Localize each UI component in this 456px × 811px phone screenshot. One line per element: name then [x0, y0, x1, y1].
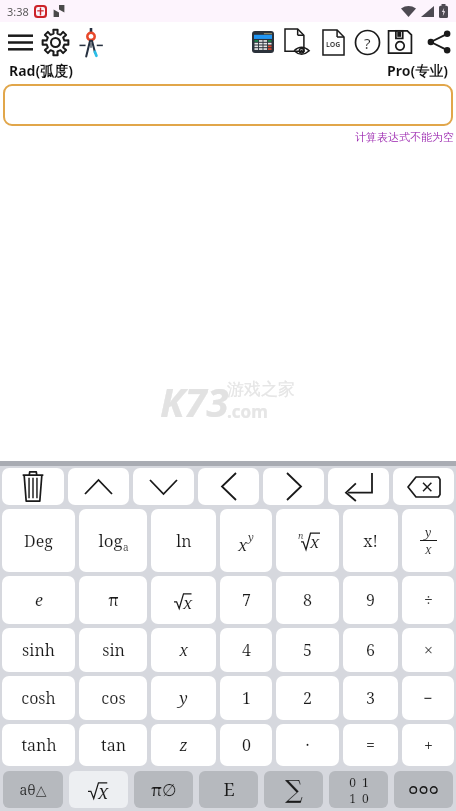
staticText: tan: [101, 734, 126, 756]
button[interactable]: [3, 84, 453, 126]
staticText: a: [123, 540, 129, 554]
button[interactable]: Calculator: [245, 24, 281, 60]
staticText: LOG: [326, 40, 341, 50]
staticText: 3:38: [7, 4, 29, 19]
button[interactable]: log: [79, 509, 147, 572]
button[interactable]: x: [220, 509, 272, 572]
staticText: y: [179, 687, 188, 709]
button[interactable]: Clear: [2, 468, 64, 505]
staticText: 游戏之家: [227, 379, 295, 400]
button[interactable]: sin: [79, 628, 147, 672]
staticText: ×: [424, 639, 433, 661]
staticText: K73: [160, 374, 229, 428]
button[interactable]: 8: [276, 576, 339, 624]
staticText: sin: [102, 639, 125, 661]
button[interactable]: tanh: [2, 724, 75, 766]
button[interactable]: x: [151, 628, 216, 672]
staticText: Deg: [24, 530, 53, 552]
staticText: ?: [364, 33, 371, 53]
button[interactable]: Enter: [328, 468, 389, 505]
button[interactable]: [394, 771, 453, 808]
staticText: 0: [242, 734, 251, 756]
staticText: −: [423, 687, 433, 709]
staticText: π: [108, 589, 119, 611]
button[interactable]: Deg: [2, 509, 75, 572]
button[interactable]: 5: [276, 628, 339, 672]
staticText: 5: [303, 639, 312, 661]
button[interactable]: ln: [151, 509, 216, 572]
button[interactable]: n: [276, 509, 339, 572]
button[interactable]: Backspace: [393, 468, 454, 505]
staticText: ·: [305, 734, 310, 756]
staticText: log: [98, 529, 123, 552]
button[interactable]: Angle mode: [73, 24, 109, 60]
staticText: ÷: [424, 589, 433, 611]
staticText: y: [248, 529, 254, 544]
staticText: y: [425, 524, 432, 540]
button[interactable]: π: [79, 576, 147, 624]
button[interactable]: ÷: [402, 576, 454, 624]
staticText: x: [425, 541, 432, 557]
staticText: π∅: [151, 778, 177, 801]
staticText: 1 0: [349, 790, 369, 806]
button[interactable]: −: [402, 676, 454, 720]
staticText: Rad(弧度): [9, 61, 73, 80]
staticText: n: [298, 529, 304, 541]
button[interactable]: ·: [276, 724, 339, 766]
staticText: tanh: [21, 734, 57, 756]
staticText: cos: [101, 687, 126, 709]
staticText: e: [35, 589, 43, 611]
button[interactable]: sinh: [2, 628, 75, 672]
staticText: .com: [227, 400, 268, 423]
button[interactable]: 0 1: [329, 771, 388, 808]
button[interactable]: cos: [79, 676, 147, 720]
button[interactable]: Down: [133, 468, 194, 505]
button[interactable]: x!: [343, 509, 398, 572]
staticText: sinh: [22, 639, 55, 661]
button[interactable]: 3: [343, 676, 398, 720]
button[interactable]: 9: [343, 576, 398, 624]
staticText: 1: [242, 687, 251, 709]
button[interactable]: =: [343, 724, 398, 766]
button[interactable]: ∑: [264, 771, 323, 808]
staticText: 0 1: [349, 774, 369, 790]
button[interactable]: 7: [220, 576, 272, 624]
button[interactable]: e: [2, 576, 75, 624]
button[interactable]: tan: [79, 724, 147, 766]
button[interactable]: Help: [349, 24, 385, 60]
button[interactable]: 6: [343, 628, 398, 672]
button[interactable]: Share: [421, 24, 456, 60]
button[interactable]: Right: [263, 468, 324, 505]
button[interactable]: +: [402, 724, 454, 766]
staticText: =: [366, 734, 375, 756]
button[interactable]: 1: [220, 676, 272, 720]
button[interactable]: z: [151, 724, 216, 766]
button[interactable]: π∅: [134, 771, 193, 808]
button[interactable]: Save: [382, 24, 418, 60]
staticText: x: [98, 779, 109, 805]
button[interactable]: 0: [220, 724, 272, 766]
staticText: 2: [303, 687, 312, 709]
button[interactable]: Menu: [2, 24, 38, 60]
button[interactable]: y: [402, 509, 454, 572]
staticText: Pro(专业): [387, 61, 448, 80]
button[interactable]: Up: [68, 468, 129, 505]
button[interactable]: E: [199, 771, 258, 808]
button[interactable]: y: [151, 676, 216, 720]
button[interactable]: 4: [220, 628, 272, 672]
staticText: 9: [366, 589, 375, 611]
button[interactable]: Settings: [37, 24, 73, 60]
button[interactable]: Log: [315, 24, 351, 60]
staticText: 4: [242, 639, 251, 661]
button[interactable]: Preview: [280, 24, 316, 60]
button[interactable]: x: [151, 576, 216, 624]
staticText: x: [183, 591, 193, 614]
button[interactable]: x: [69, 771, 128, 808]
button[interactable]: cosh: [2, 676, 75, 720]
button[interactable]: 2: [276, 676, 339, 720]
button[interactable]: Left: [198, 468, 259, 505]
staticText: z: [179, 734, 188, 756]
button[interactable]: aθ△: [3, 771, 63, 808]
staticText: x!: [363, 530, 378, 552]
button[interactable]: ×: [402, 628, 454, 672]
